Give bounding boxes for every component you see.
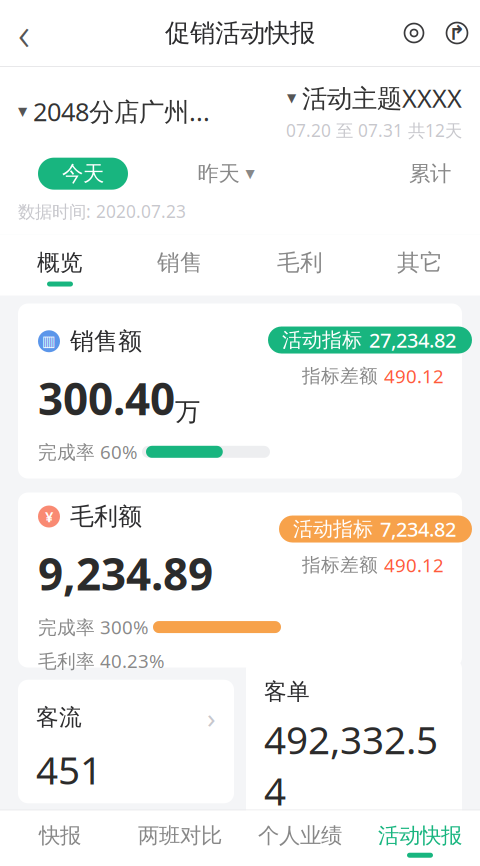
staticText: 完成率 60%: [38, 439, 138, 464]
button[interactable]: 今天: [38, 158, 128, 190]
staticText: ↱: [448, 22, 465, 44]
staticText: ▼: [287, 91, 296, 105]
button[interactable]: 昨天: [166, 158, 286, 190]
staticText: 销售: [157, 249, 203, 276]
button[interactable]: 客单: [246, 659, 462, 824]
staticText: ¥: [45, 507, 53, 526]
staticText: ‹: [18, 3, 30, 63]
button[interactable]: 其它: [360, 235, 480, 295]
staticText: 昨天: [197, 161, 239, 187]
staticText: 451: [36, 744, 102, 795]
staticText: 7,234.82: [380, 516, 456, 542]
staticText: 累计: [409, 161, 451, 187]
staticText: 毛利额: [70, 502, 142, 531]
staticText: 9,234.89: [38, 544, 213, 603]
button[interactable]: Share: [434, 11, 480, 55]
staticText: 销售额: [70, 326, 142, 356]
staticText: 其它: [397, 249, 443, 276]
staticText: 490.12: [384, 363, 444, 388]
staticText: 快报: [39, 822, 81, 849]
button[interactable]: 毛利: [240, 235, 360, 295]
staticText: 活动指标: [293, 517, 373, 541]
button[interactable]: ▼: [0, 80, 210, 128]
staticText: 概览: [37, 249, 83, 276]
button[interactable]: 两班对比: [120, 810, 240, 866]
staticText: 两班对比: [138, 822, 222, 849]
button[interactable]: 累计: [380, 158, 480, 190]
staticText: ›: [207, 699, 216, 736]
staticText: 万: [175, 396, 200, 427]
staticText: ▼: [245, 167, 254, 180]
button[interactable]: 概览: [0, 235, 120, 295]
button[interactable]: 快报: [0, 810, 120, 866]
button[interactable]: Back: [0, 11, 48, 55]
staticText: 指标差额: [302, 553, 378, 576]
staticText: 活动指标: [282, 328, 362, 352]
staticText: 活动快报: [378, 822, 462, 849]
button[interactable]: Settings: [394, 11, 434, 55]
staticText: 07.20 至 07.31 共12天: [286, 119, 462, 142]
staticText: 数据时间: 2020.07.23: [18, 200, 186, 223]
staticText: 活动主题XXXX: [302, 81, 462, 115]
button[interactable]: 个人业绩: [240, 810, 360, 866]
staticText: 毛利: [277, 249, 323, 276]
button[interactable]: 销售: [120, 235, 240, 295]
staticText: ▼: [18, 104, 27, 118]
staticText: 完成率 300%: [38, 615, 149, 639]
staticText: 27,234.82: [369, 327, 456, 353]
button[interactable]: ▼: [286, 67, 480, 142]
staticText: 客单: [264, 678, 310, 706]
staticText: 毛利率 40.23%: [38, 648, 165, 673]
staticText: 促销活动快报: [165, 17, 315, 48]
staticText: 300.40: [38, 369, 175, 427]
staticText: 今天: [62, 161, 104, 187]
button[interactable]: 活动快报: [360, 810, 480, 866]
staticText: 492,332.54: [264, 714, 438, 816]
button[interactable]: 客流: [18, 680, 234, 803]
staticText: 490.12: [384, 552, 444, 577]
staticText: 客流: [36, 703, 82, 731]
staticText: 指标差额: [302, 364, 378, 387]
staticText: 个人业绩: [258, 822, 342, 849]
staticText: 2048分店广州...: [33, 94, 210, 128]
staticText: ▥: [42, 333, 56, 349]
